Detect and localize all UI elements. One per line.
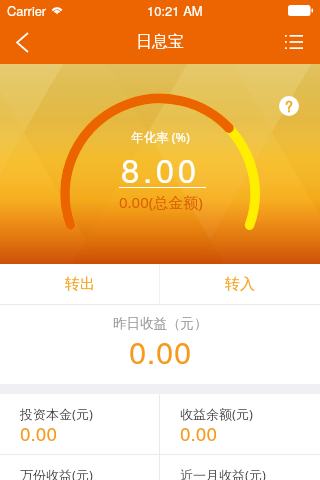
staticText: 0.00 [180, 419, 217, 446]
button[interactable]: 转入 [160, 264, 320, 304]
staticText: 转出 [65, 275, 95, 294]
button[interactable]: 转出 [0, 264, 159, 304]
staticText: 年化率 (%) [131, 129, 190, 146]
button[interactable]: 近一月收益(元) [160, 455, 320, 480]
button[interactable]: Help [279, 96, 299, 116]
staticText: 10:21 AM [147, 1, 203, 20]
staticText: 近一月收益(元) [180, 466, 266, 480]
staticText: 万份收益(元) [20, 466, 93, 480]
staticText: 0.00 [129, 328, 192, 372]
button[interactable]: 收益余额(元) [160, 394, 320, 454]
staticText: 投资本金(元) [20, 405, 93, 423]
staticText: 转入 [225, 275, 255, 294]
button[interactable]: Menu [276, 24, 312, 60]
staticText: 昨日收益（元） [113, 315, 208, 332]
button[interactable]: Back [0, 20, 44, 64]
button[interactable]: 投资本金(元) [0, 394, 159, 454]
staticText: 收益余额(元) [180, 405, 253, 423]
staticText: Carrier [7, 1, 47, 19]
staticText: ? [285, 96, 293, 116]
staticText: 8.00 [121, 145, 200, 192]
staticText: 0.00(总金额) [119, 192, 203, 212]
button[interactable]: 万份收益(元) [0, 455, 159, 480]
staticText: 0.00 [20, 419, 57, 446]
staticText: 日息宝 [136, 32, 184, 52]
